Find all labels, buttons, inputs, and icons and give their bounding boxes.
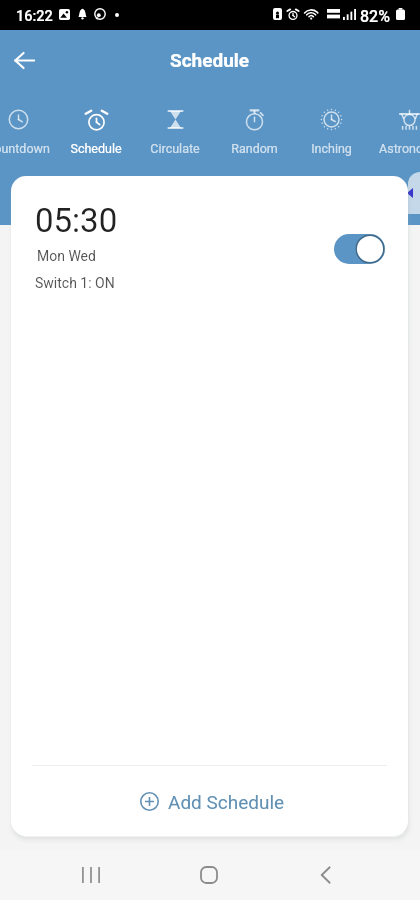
staticText: Countdown <box>0 141 50 156</box>
staticText: Astronomy <box>379 141 420 156</box>
button[interactable]: Recents <box>67 850 115 900</box>
button[interactable]: Back <box>301 850 349 900</box>
staticText: Switch 1: ON <box>35 275 115 291</box>
button[interactable]: Home <box>185 850 233 900</box>
button[interactable]: Astronomy <box>370 90 420 165</box>
button[interactable]: Schedule <box>57 90 135 165</box>
staticText: Inching <box>311 141 352 156</box>
button[interactable]: Countdown <box>0 90 57 165</box>
staticText: Circulate <box>150 141 200 156</box>
staticText: 16:22 <box>16 8 53 25</box>
button[interactable]: Random <box>215 90 293 165</box>
button[interactable]: Back <box>3 39 45 81</box>
button[interactable]: Circulate <box>136 90 214 165</box>
staticText: 82% <box>360 7 390 26</box>
staticText: Schedule <box>70 141 122 156</box>
button[interactable]: Add Schedule <box>14 766 408 836</box>
staticText: Schedule <box>170 49 250 71</box>
staticText: 05:30 <box>35 201 118 240</box>
button[interactable]: Inching <box>292 90 370 165</box>
staticText: Random <box>231 141 278 156</box>
button[interactable]: Toggle schedule <box>334 234 385 264</box>
staticText: Mon Wed <box>37 248 96 264</box>
staticText: Add Schedule <box>168 791 285 813</box>
